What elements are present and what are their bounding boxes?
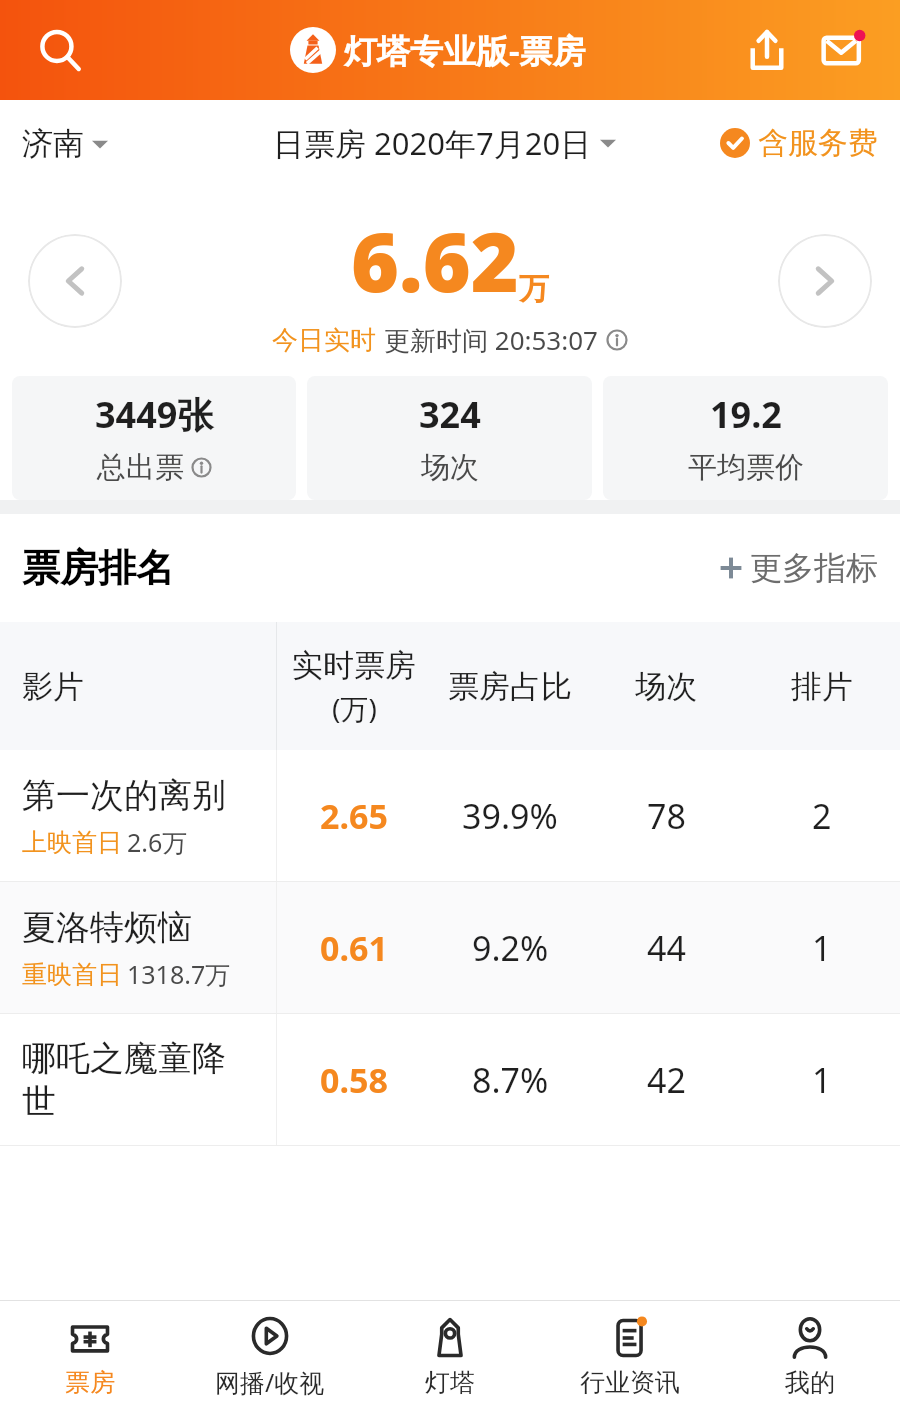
staticText: 6.62 [351,204,519,316]
staticText: 1 [812,925,832,971]
staticText: 影片 [22,667,84,706]
staticText: 夏洛特烦恼 [22,906,192,949]
staticText: 44 [647,925,686,971]
staticText: 0.61 [320,925,388,971]
staticText: 灯塔 [425,1367,475,1398]
button[interactable]: 含服务费 [720,124,878,162]
button[interactable]: 网播/收视 [180,1301,360,1411]
staticText: 更多指标 [750,548,878,588]
staticText: 2.65 [320,793,388,839]
staticText: 票房 [65,1367,115,1398]
button[interactable]: 日票房 2020年7月20日 [273,122,616,164]
staticText: 第一次的离别 [22,774,226,817]
staticText: 行业资讯 [580,1367,680,1398]
staticText: 8.7% [472,1057,549,1103]
staticText: 今日实时 [272,324,376,357]
staticText: 灯塔专业版-票房 [344,28,586,73]
staticText: 排片 [791,667,853,706]
button[interactable]: 3449张 [12,376,296,500]
button[interactable]: 哪吒之魔童降 [0,1014,900,1146]
staticText: 票房占比 [448,667,572,706]
staticText: (万) [332,689,377,727]
button[interactable]: 324 [307,376,592,500]
staticText: 1 [812,1057,832,1103]
staticText: 2 [812,793,832,839]
staticText: 2.6万 [127,825,188,859]
staticText: 日票房 2020年7月20日 [273,122,592,164]
button[interactable]: Previous day [28,234,122,328]
button[interactable]: Messages [812,19,874,81]
staticText: 9.2% [472,925,549,971]
button[interactable]: 行业资讯 [540,1301,720,1411]
staticText: 万 [519,270,549,308]
staticText: 更新时间 20:53:07 [384,322,598,358]
staticText: 重映首日 [22,959,122,990]
button[interactable]: 第一次的离别 [0,750,900,882]
staticText: 票房排名 [22,544,174,592]
staticText: 42 [647,1057,686,1103]
staticText: 0.58 [320,1057,388,1103]
button[interactable]: 更多指标 [718,548,878,588]
staticText: 总出票 [97,449,184,486]
button[interactable]: 济南 [22,124,108,163]
staticText: 哪吒之魔童降 [22,1037,226,1080]
button[interactable]: 灯塔专业版-票房 [290,27,586,73]
staticText: 78 [647,793,686,839]
button[interactable]: Share [736,19,798,81]
staticText: 我的 [785,1367,835,1398]
staticText: 上映首日 [22,827,122,858]
staticText: 场次 [421,449,479,486]
button[interactable]: 19.2 [603,376,888,500]
button[interactable]: 灯塔 [360,1301,540,1411]
button[interactable]: 票房 [0,1301,180,1411]
staticText: 实时票房 [292,646,416,685]
staticText: 网播/收视 [215,1365,325,1399]
button[interactable]: 我的 [720,1301,900,1411]
staticText: 3449张 [95,390,214,439]
button[interactable]: 夏洛特烦恼 [0,882,900,1014]
staticText: 19.2 [710,390,782,439]
staticText: 39.9% [462,793,558,839]
staticText: 含服务费 [758,124,878,162]
button[interactable]: Search [30,20,90,80]
staticText: 场次 [635,667,697,706]
staticText: 324 [419,390,481,439]
staticText: 平均票价 [688,449,804,486]
button[interactable]: Next day [778,234,872,328]
staticText: 1318.7万 [127,957,231,991]
staticText: 济南 [22,124,84,163]
staticText: 世 [22,1080,56,1123]
